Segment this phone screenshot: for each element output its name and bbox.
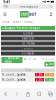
staticText: BET [29, 12, 36, 17]
button[interactable]: Volleyball [1, 51, 55, 55]
button[interactable]: 1.55 [45, 78, 54, 81]
staticText: 1.55 [46, 78, 53, 81]
staticText: ▸ Russian Premier League [3, 26, 41, 30]
button[interactable]: AA [0, 3, 56, 9]
button[interactable]: Ice Hockey [1, 41, 55, 45]
button[interactable]: 1.85 [35, 73, 44, 76]
staticText: ↻ [50, 5, 52, 8]
button[interactable]: Menu [2, 9, 8, 19]
staticText: 2.10 [46, 73, 53, 76]
button[interactable]: Tabs [45, 88, 56, 100]
button[interactable]: Share [22, 88, 34, 100]
button[interactable]: Back [0, 88, 11, 100]
staticText: INT [21, 12, 28, 17]
staticText: Sat 19 Oct · 18:00 CET [23, 57, 54, 60]
staticText: Total [25, 68, 31, 72]
button[interactable]: ● LIVE [44, 62, 54, 66]
staticText: Home › Soccer › Russia [2, 20, 32, 24]
staticText: Volleyball [21, 52, 34, 55]
button[interactable]: Account [48, 9, 54, 19]
button[interactable]: Basketball [1, 36, 55, 40]
button[interactable]: Bookmarks [34, 88, 45, 100]
staticText: intertops.eu [20, 5, 38, 8]
button[interactable]: Football [1, 31, 55, 35]
staticText: FC Zenit – Spartak [2, 73, 25, 76]
staticText: 1.85 [36, 73, 43, 76]
staticText: Ice Hockey [21, 42, 34, 45]
staticText: Football [22, 32, 33, 35]
button[interactable]: ✓ Show All Odds [1, 57, 22, 63]
button[interactable]: Tennis [1, 46, 55, 50]
button[interactable]: 2.10 [45, 73, 54, 76]
staticText: ✓ Show All Odds [4, 56, 19, 64]
staticText: 2.45 [36, 78, 43, 81]
staticText: ● LIVE [45, 62, 53, 66]
button[interactable]: 2.45 [35, 78, 44, 81]
staticText: 9:41 [3, 0, 10, 4]
staticText: AA [4, 5, 8, 8]
staticText: FC Zenit – Spartak [2, 78, 25, 81]
button[interactable]: Forward [11, 88, 22, 100]
staticText: Basketball [21, 37, 34, 40]
staticText: Tennis [23, 47, 32, 50]
